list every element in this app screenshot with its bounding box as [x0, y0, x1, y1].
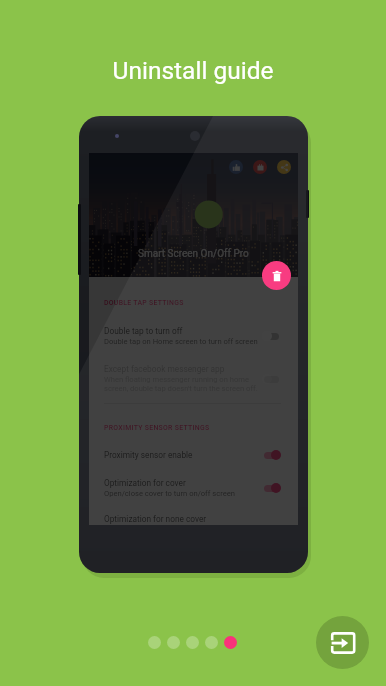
- button[interactable]: Double tap to turn off: [104, 326, 281, 346]
- staticText: Optimization for none cover: [104, 514, 207, 524]
- staticText: Except facebook messenger app: [104, 364, 225, 374]
- staticText: Open/close cover to turn on/off screen: [104, 489, 235, 498]
- button[interactable]: Page 2: [167, 636, 180, 649]
- button[interactable]: Continue: [316, 616, 369, 669]
- staticText: Double tap to turn off: [104, 326, 183, 336]
- button[interactable]: Optimization for none cover: [104, 514, 281, 524]
- button[interactable]: Page 1: [148, 636, 161, 649]
- button[interactable]: Except facebook messenger app: [104, 364, 281, 393]
- button[interactable]: Optimization for cover: [104, 478, 281, 498]
- button[interactable]: Page 5: [224, 636, 237, 649]
- button[interactable]: Page 4: [205, 636, 218, 649]
- button[interactable]: Off: [262, 330, 281, 342]
- staticText: DOUBLE TAP SETTINGS: [104, 299, 184, 307]
- button[interactable]: Like: [229, 160, 243, 174]
- button[interactable]: Proximity sensor enable: [104, 449, 281, 461]
- button[interactable]: Store: [253, 160, 267, 174]
- staticText: Uninstall guide: [0, 56, 386, 85]
- staticText: PROXIMITY SENSOR SETTINGS: [104, 424, 210, 432]
- button[interactable]: On: [262, 449, 281, 461]
- staticText: Proximity sensor enable: [104, 450, 193, 460]
- button[interactable]: On: [262, 482, 281, 494]
- staticText: Smart Screen On/Off Pro: [138, 248, 249, 260]
- button[interactable]: Share: [277, 160, 291, 174]
- staticText: Optimization for cover: [104, 478, 186, 488]
- button[interactable]: Delete: [262, 261, 291, 290]
- staticText: Double tap on Home screen to turn off sc…: [104, 337, 258, 346]
- button[interactable]: Page 3: [186, 636, 199, 649]
